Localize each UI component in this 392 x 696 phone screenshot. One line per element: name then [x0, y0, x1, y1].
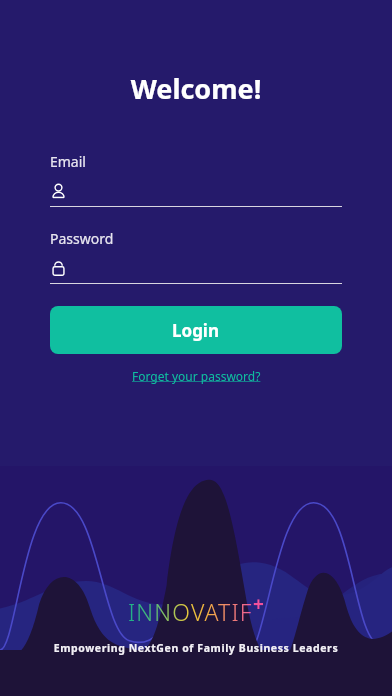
- button[interactable]: Password: [50, 229, 342, 284]
- other: Password: [50, 260, 67, 277]
- button[interactable]: Login: [50, 306, 342, 354]
- staticText: INNOVATIF: [128, 596, 253, 627]
- staticText: Password: [50, 229, 114, 248]
- staticText: Email: [50, 152, 86, 171]
- staticText: Login: [172, 319, 220, 342]
- staticText: +: [253, 591, 264, 617]
- button[interactable]: Forget your password?: [126, 366, 267, 386]
- staticText: Welcome!: [0, 70, 392, 107]
- other: Email: [50, 183, 67, 200]
- button[interactable]: Email: [50, 152, 342, 207]
- staticText: Empowering NextGen of Family Business Le…: [0, 641, 392, 655]
- staticText: Forget your password?: [132, 368, 261, 384]
